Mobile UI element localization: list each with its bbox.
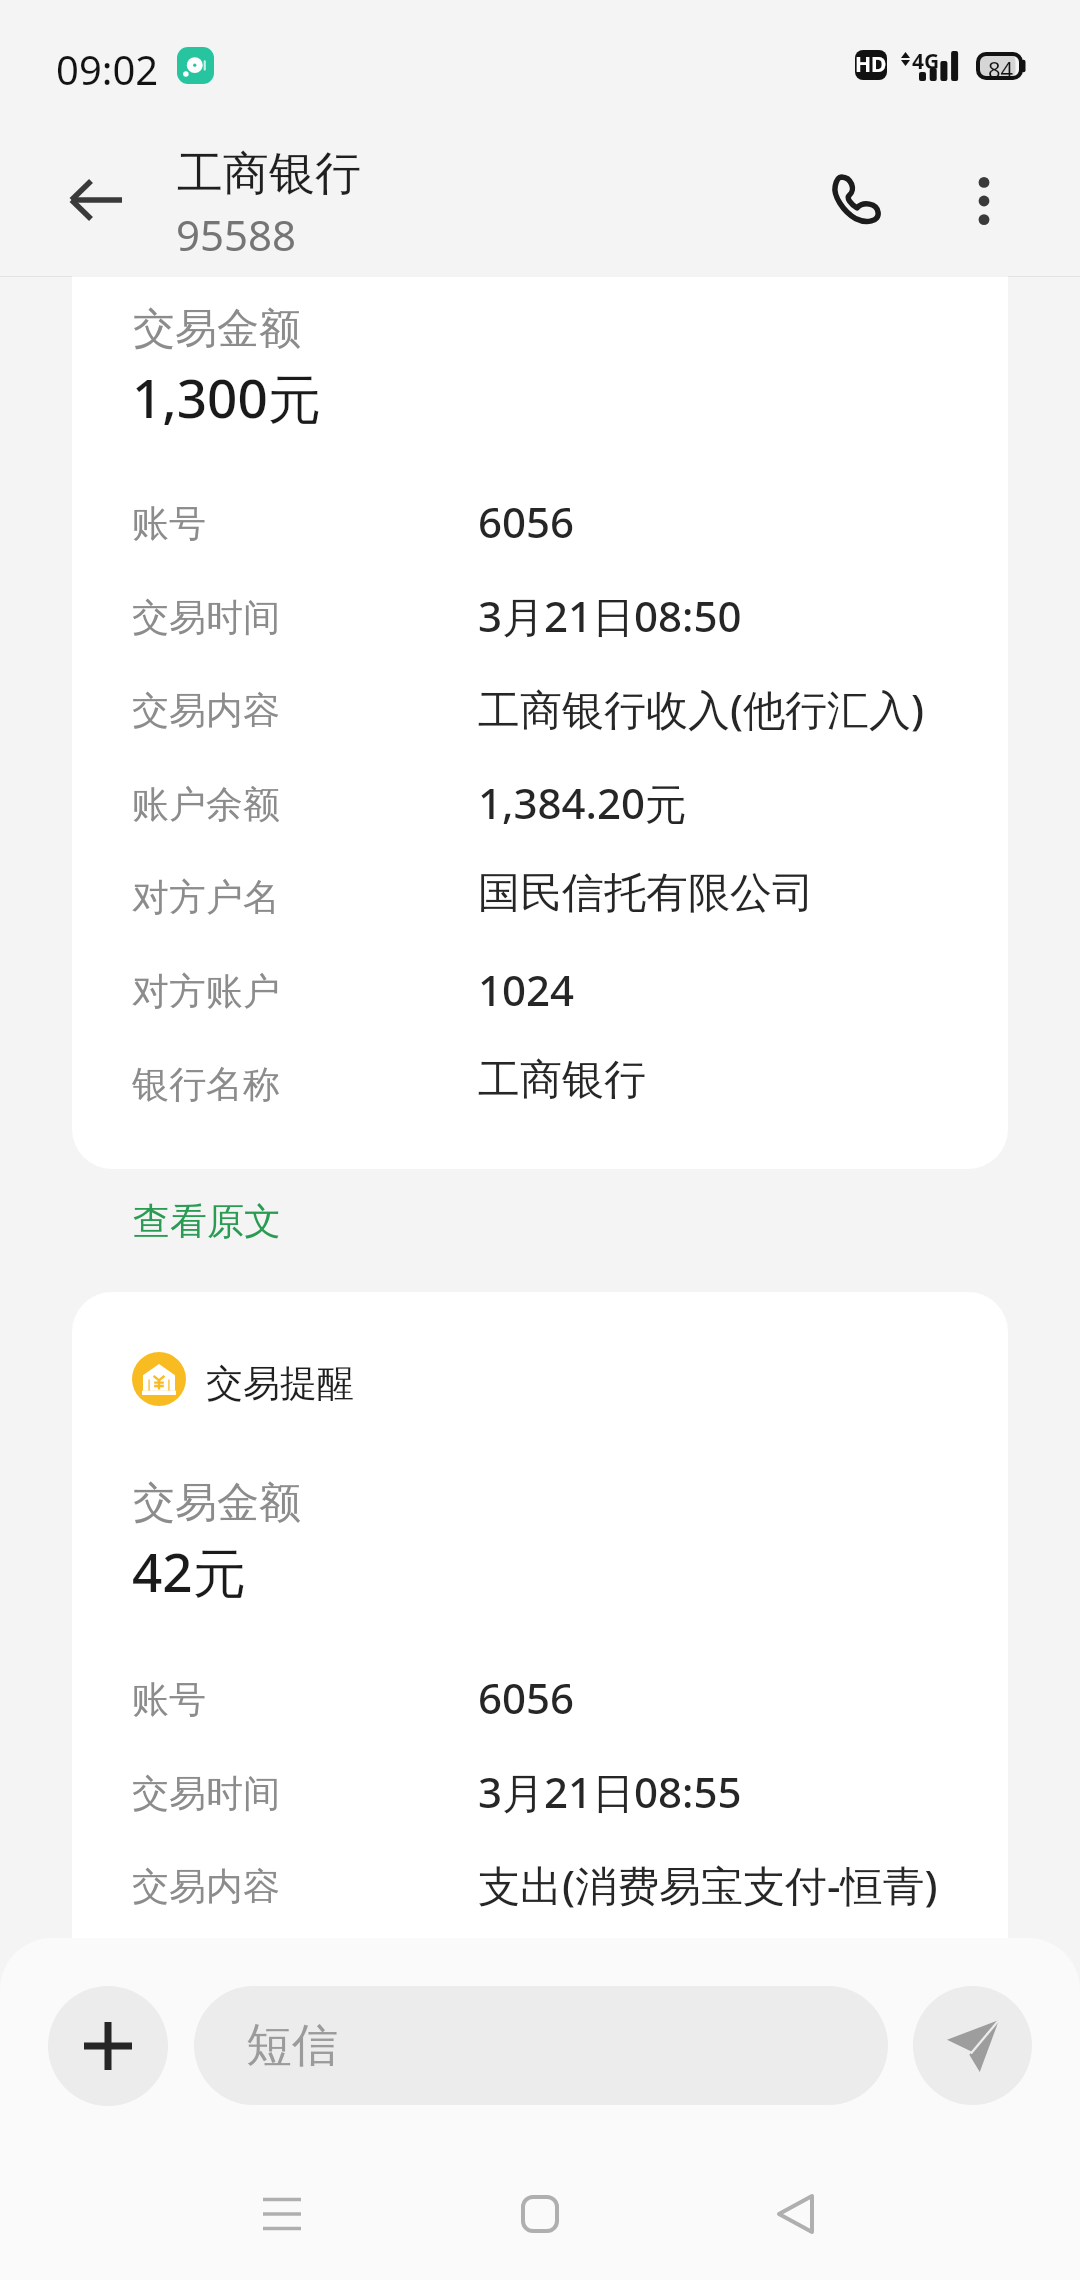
button[interactable]: More options bbox=[928, 145, 1040, 257]
button[interactable]: Back bbox=[40, 144, 152, 256]
staticText: 09:02 bbox=[56, 42, 159, 96]
staticText: 账户余额 bbox=[132, 781, 280, 828]
staticText: 短信 bbox=[246, 2017, 338, 2075]
staticText: 国民信托有限公司 bbox=[478, 867, 814, 920]
button[interactable]: 短信 bbox=[194, 1986, 888, 2105]
button[interactable]: Add attachment bbox=[48, 1986, 168, 2106]
staticText: 交易内容 bbox=[132, 687, 280, 734]
staticText: 交易金额 bbox=[133, 1477, 301, 1530]
staticText: 1,384.20元 bbox=[478, 774, 688, 831]
button[interactable]: Home bbox=[482, 2156, 598, 2272]
staticText: 工商银行收入(他行汇入) bbox=[478, 680, 925, 737]
staticText: 1024 bbox=[478, 961, 575, 1018]
staticText: 3月21日08:55 bbox=[478, 1763, 742, 1820]
staticText: 4G bbox=[912, 47, 940, 76]
button[interactable]: Send bbox=[913, 1986, 1032, 2105]
staticText: 银行名称 bbox=[132, 1061, 280, 1108]
staticText: 支出(消费易宝支付-恒青) bbox=[478, 1856, 938, 1913]
staticText: 42元 bbox=[132, 1535, 246, 1607]
staticText: 交易时间 bbox=[132, 594, 280, 641]
staticText: HD bbox=[855, 50, 887, 79]
button[interactable]: Recent apps bbox=[224, 2156, 340, 2272]
button[interactable]: 查看原文 bbox=[121, 1190, 293, 1253]
staticText: 交易内容 bbox=[132, 1863, 280, 1910]
staticText: 95588 bbox=[176, 206, 297, 263]
staticText: 工商银行 bbox=[177, 145, 361, 203]
staticText: 1,300元 bbox=[132, 361, 321, 433]
button[interactable]: 交易金额 bbox=[72, 277, 1008, 1169]
button[interactable]: Back bbox=[737, 2156, 853, 2272]
staticText: 交易提醒 bbox=[206, 1360, 354, 1407]
staticText: 账号 bbox=[132, 500, 206, 547]
button[interactable]: Call bbox=[800, 142, 912, 254]
staticText: 交易时间 bbox=[132, 1770, 280, 1817]
staticText: 查看原文 bbox=[133, 1198, 281, 1245]
staticText: 交易金额 bbox=[133, 303, 301, 356]
staticText: 账号 bbox=[132, 1676, 206, 1723]
staticText: 工商银行 bbox=[478, 1054, 646, 1107]
staticText: 对方账户 bbox=[132, 968, 280, 1015]
staticText: 6056 bbox=[478, 493, 575, 550]
staticText: 3月21日08:50 bbox=[478, 587, 742, 644]
button[interactable]: 交易提醒 bbox=[72, 1292, 1008, 1938]
staticText: 对方户名 bbox=[132, 874, 280, 921]
staticText: 84 bbox=[988, 54, 1014, 82]
staticText: 6056 bbox=[478, 1669, 575, 1726]
